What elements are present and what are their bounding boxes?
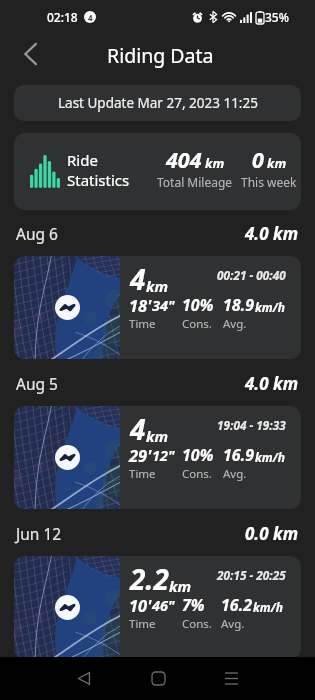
staticText: 12" bbox=[152, 445, 175, 465]
staticText: Time bbox=[129, 466, 156, 482]
staticText: 10% bbox=[182, 444, 214, 466]
staticText: 4 bbox=[88, 12, 93, 23]
button[interactable]: 4 bbox=[14, 256, 301, 359]
staticText: 4.0 km bbox=[245, 372, 299, 395]
staticText: Cons. bbox=[182, 316, 212, 332]
button[interactable]: Last Update Mar 27, 2023 11:25 bbox=[14, 85, 301, 121]
staticText: Cons. bbox=[182, 466, 212, 482]
button[interactable]: Recents bbox=[209, 657, 253, 700]
staticText: 4 bbox=[130, 260, 146, 298]
button[interactable]: 2.2 bbox=[14, 556, 301, 659]
staticText: km bbox=[146, 276, 169, 296]
staticText: Time bbox=[129, 316, 156, 332]
staticText: Aug 5 bbox=[16, 373, 58, 394]
staticText: 4.0 km bbox=[245, 222, 299, 245]
staticText: 19:04 - 19:33 bbox=[217, 417, 286, 433]
button[interactable]: Home bbox=[136, 657, 180, 700]
staticText: Avg. bbox=[223, 466, 247, 482]
staticText: Jun 12 bbox=[16, 523, 62, 544]
staticText: 34" bbox=[152, 295, 175, 315]
staticText: km bbox=[267, 154, 287, 172]
staticText: 10' bbox=[129, 594, 152, 616]
staticText: 4 bbox=[130, 410, 146, 448]
staticText: Statistics bbox=[67, 170, 130, 190]
button[interactable]: Ride bbox=[14, 133, 301, 210]
staticText: 7% bbox=[182, 594, 205, 616]
staticText: km/h bbox=[255, 449, 286, 465]
staticText: Time bbox=[129, 616, 156, 632]
staticText: 0 bbox=[252, 145, 264, 174]
staticText: 404 bbox=[166, 145, 202, 174]
staticText: 46" bbox=[152, 595, 175, 615]
staticText: 02:18 bbox=[47, 9, 78, 25]
staticText: Avg. bbox=[223, 316, 247, 332]
staticText: km/h bbox=[253, 599, 284, 615]
staticText: 2.2 bbox=[130, 560, 169, 598]
button[interactable]: Back bbox=[62, 657, 106, 700]
staticText: Aug 6 bbox=[16, 223, 58, 244]
staticText: 35% bbox=[265, 9, 289, 25]
staticText: km/h bbox=[255, 299, 286, 315]
staticText: Total Mileage bbox=[157, 174, 233, 190]
staticText: 00:21 - 00:40 bbox=[217, 267, 286, 283]
staticText: 18' bbox=[129, 294, 152, 316]
button[interactable]: Back bbox=[12, 36, 48, 72]
button[interactable]: 4 bbox=[14, 406, 301, 509]
staticText: This week bbox=[241, 174, 297, 190]
staticText: Riding Data bbox=[107, 42, 214, 69]
staticText: Last Update Mar 27, 2023 11:25 bbox=[58, 94, 258, 112]
staticText: km bbox=[146, 426, 169, 446]
staticText: 16.9 bbox=[223, 444, 255, 466]
staticText: Cons. bbox=[182, 616, 212, 632]
staticText: 18.9 bbox=[223, 294, 255, 316]
staticText: Ride bbox=[67, 150, 98, 170]
staticText: km bbox=[205, 154, 225, 172]
staticText: 29' bbox=[129, 444, 152, 466]
staticText: km bbox=[169, 576, 192, 596]
staticText: 10% bbox=[182, 294, 214, 316]
staticText: Avg. bbox=[221, 616, 245, 632]
staticText: 0.0 km bbox=[245, 522, 299, 545]
staticText: 16.2 bbox=[221, 594, 253, 616]
staticText: 20:15 - 20:25 bbox=[217, 567, 286, 583]
